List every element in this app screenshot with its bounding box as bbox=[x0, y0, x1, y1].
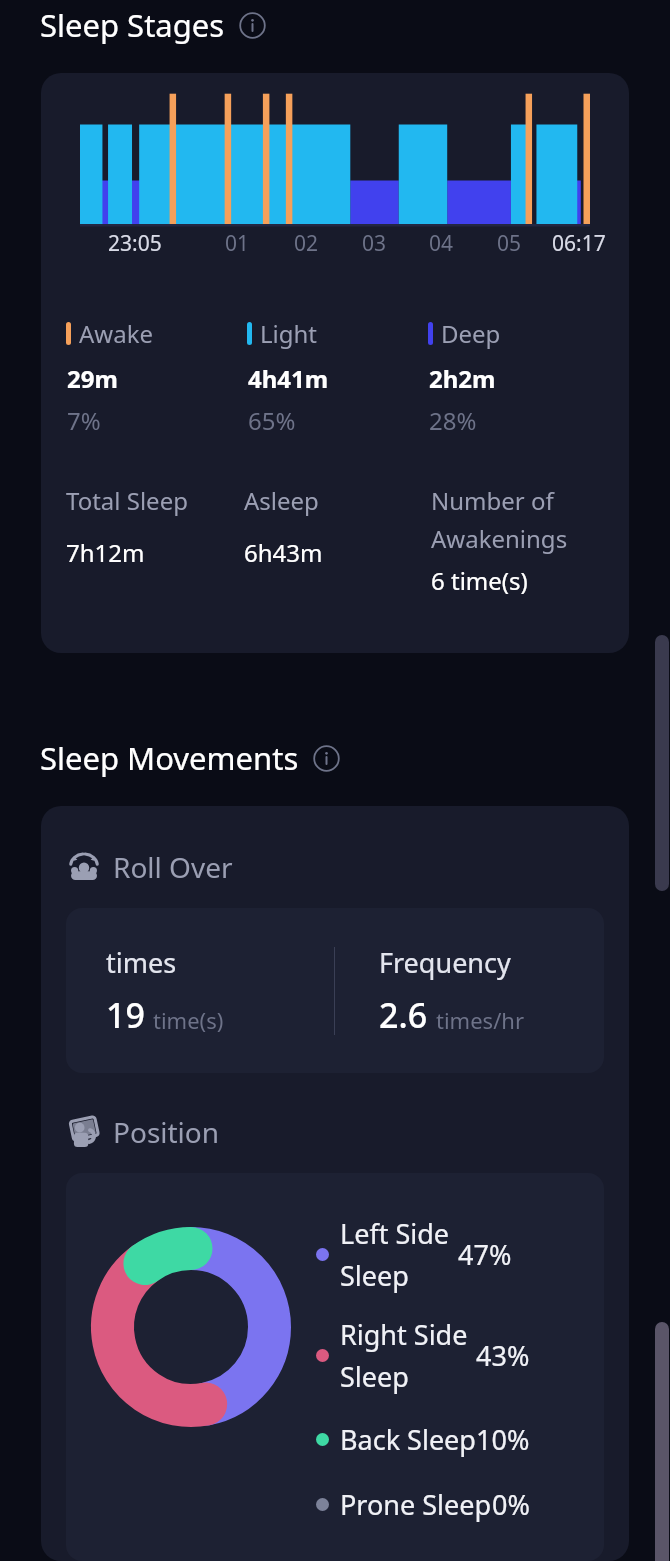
staticText: Deep bbox=[441, 317, 501, 350]
staticText: 29m bbox=[67, 362, 118, 395]
staticText: times bbox=[106, 944, 177, 981]
staticText: Number of Awakenings bbox=[431, 484, 609, 555]
staticText: 43% bbox=[476, 1337, 530, 1374]
button[interactable]: Left Side Sleep bbox=[66, 1173, 604, 1561]
staticText: 0% bbox=[492, 1486, 530, 1523]
button[interactable]: 23:05 bbox=[41, 73, 629, 653]
staticText: 65% bbox=[248, 404, 296, 437]
button[interactable]: Left Side Sleep bbox=[316, 1215, 592, 1294]
other: Roll Over bbox=[66, 849, 102, 885]
staticText: Asleep bbox=[244, 484, 319, 517]
staticText: time(s) bbox=[153, 1005, 224, 1035]
staticText: times/hr bbox=[436, 1005, 525, 1035]
staticText: Frequency bbox=[379, 944, 511, 981]
staticText: Back Sleep bbox=[340, 1421, 476, 1458]
staticText: 7% bbox=[67, 404, 101, 437]
staticText: 10% bbox=[476, 1421, 530, 1458]
staticText: Sleep Stages bbox=[40, 4, 225, 46]
button[interactable]: Position bbox=[66, 1113, 220, 1151]
staticText: 2.6 bbox=[379, 992, 428, 1038]
button[interactable]: Roll Over bbox=[41, 806, 629, 1561]
staticText: 03 bbox=[362, 229, 387, 258]
staticText: Position bbox=[113, 1113, 220, 1151]
button[interactable]: Roll Over bbox=[66, 848, 233, 886]
staticText: Total Sleep bbox=[66, 484, 188, 517]
staticText: 6 time(s) bbox=[431, 564, 528, 597]
staticText: 28% bbox=[429, 404, 477, 437]
button[interactable]: Info about Sleep Stages bbox=[237, 10, 267, 40]
staticText: 7h12m bbox=[66, 536, 145, 569]
staticText: Light bbox=[260, 317, 318, 350]
staticText: 4h41m bbox=[248, 362, 329, 395]
staticText: 6h43m bbox=[244, 536, 323, 569]
staticText: Sleep Movements bbox=[40, 737, 299, 779]
other: Position bbox=[66, 1114, 102, 1150]
staticText: Roll Over bbox=[113, 848, 233, 886]
button[interactable]: Info about Sleep Movements bbox=[311, 743, 341, 773]
button[interactable]: Prone Sleep bbox=[316, 1486, 592, 1523]
staticText: 2h2m bbox=[429, 362, 496, 395]
staticText: 47% bbox=[458, 1236, 512, 1273]
staticText: Left Side Sleep bbox=[340, 1215, 450, 1294]
button[interactable]: Right Side Sleep bbox=[316, 1316, 592, 1395]
staticText: 02 bbox=[294, 229, 319, 258]
staticText: 05 bbox=[497, 229, 522, 258]
staticText: Awake bbox=[79, 317, 154, 350]
staticText: 06:17 bbox=[552, 229, 606, 258]
staticText: Prone Sleep bbox=[340, 1486, 492, 1523]
staticText: 19 bbox=[106, 992, 145, 1038]
staticText: 01 bbox=[225, 229, 250, 258]
button[interactable]: times bbox=[66, 908, 604, 1073]
staticText: 04 bbox=[429, 229, 454, 258]
staticText: Right Side Sleep bbox=[340, 1316, 468, 1395]
staticText: 23:05 bbox=[108, 229, 162, 258]
button[interactable]: Back Sleep bbox=[316, 1421, 592, 1458]
